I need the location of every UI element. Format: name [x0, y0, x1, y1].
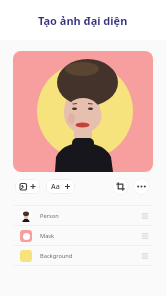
- button[interactable]: [15, 179, 40, 194]
- staticText: Person: [40, 212, 59, 220]
- button[interactable]: [133, 178, 150, 195]
- staticText: Mask: [40, 232, 55, 240]
- staticText: Aa: [51, 182, 60, 192]
- button[interactable]: Mask: [14, 226, 154, 246]
- button[interactable]: Aa: [46, 179, 75, 194]
- staticText: Background: [40, 252, 73, 260]
- button[interactable]: [13, 51, 153, 172]
- button[interactable]: Person: [14, 206, 154, 226]
- button[interactable]: Background: [14, 246, 154, 266]
- staticText: Tạo ảnh đại diện: [38, 13, 128, 28]
- button[interactable]: [112, 178, 129, 195]
